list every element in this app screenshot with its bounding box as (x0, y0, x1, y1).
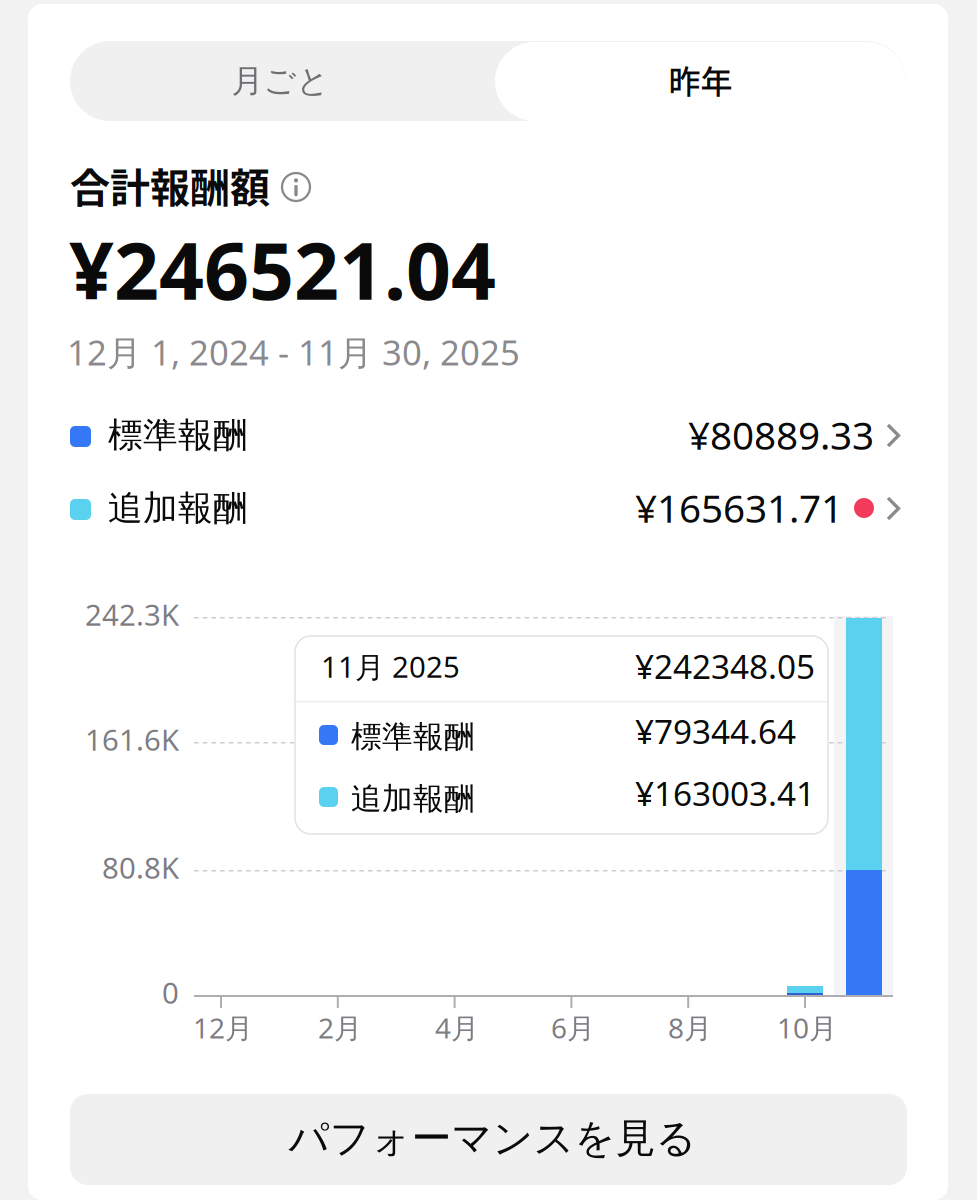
staticText: 標準報酬 (351, 718, 475, 756)
button[interactable]: 標準報酬 (70, 405, 906, 469)
staticText: 242.3K (85, 595, 179, 634)
button[interactable]: 合計報酬額について (274, 165, 318, 209)
staticText: 追加報酬 (108, 487, 248, 530)
button[interactable]: 昨年 (495, 42, 906, 121)
staticText: 合計報酬額 (70, 156, 270, 214)
staticText: ¥165631.71 (635, 482, 843, 533)
staticText: 12月 (193, 1009, 253, 1046)
staticText: 12月 1, 2024 - 11月 30, 2025 (67, 329, 520, 375)
staticText: ¥163003.41 (635, 771, 815, 815)
staticText: 6月 (551, 1009, 595, 1046)
button[interactable]: 月ごと (70, 41, 491, 121)
staticText: 2月 (318, 1009, 362, 1046)
staticText: 追加報酬 (351, 780, 475, 818)
staticText: 月ごと (231, 61, 329, 101)
staticText: 80.8K (102, 848, 179, 887)
button[interactable]: 追加報酬 (70, 478, 906, 542)
staticText: 11月 2025 (321, 647, 460, 686)
staticText: ¥79344.64 (635, 709, 796, 753)
staticText: 8月 (668, 1009, 712, 1046)
staticText: パフォーマンスを見る (288, 1114, 696, 1163)
staticText: 昨年 (668, 56, 732, 103)
staticText: 0 (162, 973, 179, 1012)
button[interactable]: パフォーマンスを見る (70, 1094, 907, 1185)
staticText: ¥80889.33 (688, 409, 874, 460)
staticText: 標準報酬 (108, 414, 248, 457)
staticText: ¥246521.04 (69, 217, 496, 321)
staticText: 4月 (435, 1009, 479, 1046)
staticText: ¥242348.05 (635, 644, 815, 688)
staticText: 10月 (777, 1009, 837, 1046)
staticText: 161.6K (85, 720, 179, 759)
